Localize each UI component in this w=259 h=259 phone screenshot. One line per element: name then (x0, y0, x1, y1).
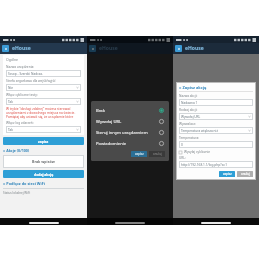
staticText: Strefa zegarkowa dla wejść/wyjść (6, 79, 56, 83)
staticText: URL: (179, 156, 186, 160)
button[interactable]: http://192.168.1.1/log.php?a=1 (179, 161, 253, 168)
button[interactable]: 0 (179, 141, 253, 148)
button[interactable]: zapisz (3, 137, 84, 145)
button[interactable]: » Akcje (0/100) (3, 147, 30, 154)
button[interactable]: zapisz (219, 171, 235, 177)
button[interactable]: Nadawca 1 (179, 99, 253, 106)
button[interactable]: Wywołaj URL (179, 113, 253, 120)
button[interactable]: Powiadomienie (91, 138, 169, 149)
button[interactable]: Tak (6, 98, 81, 105)
staticText: Nazwa akcji: (179, 94, 198, 98)
staticText: Ogólne (6, 57, 19, 62)
staticText: Włącz cykliczne testy: (6, 93, 38, 97)
button[interactable]: anuluj (237, 171, 253, 177)
staticText: zapisz (135, 152, 144, 156)
button[interactable]: Tak (6, 126, 81, 133)
button[interactable]: anuluj (149, 151, 165, 157)
button[interactable]: Temperatura większa niż (179, 127, 253, 134)
staticText: Nadawca 1 (181, 101, 251, 105)
staticText: zapisz (38, 139, 49, 144)
staticText: Nie (8, 86, 76, 90)
staticText: Steruj innym urządzeniem (96, 130, 159, 136)
staticText: Tak (8, 100, 76, 104)
button[interactable]: Menu (89, 45, 96, 52)
staticText: dodaj akcję (34, 172, 54, 177)
button[interactable]: zapisz (131, 151, 147, 157)
staticText: Temperatura większa niż (181, 129, 248, 133)
button[interactable]: Steruj innym urządzeniem (91, 127, 169, 138)
staticText: Scsop - Szeroki Nadcza. (8, 72, 79, 76)
staticText: » Zapisz akcję (179, 85, 207, 90)
staticText: Wysyłaj cyklicznie (184, 150, 211, 154)
button[interactable]: Brak (91, 105, 169, 116)
button[interactable]: dodaj akcję (3, 170, 84, 178)
staticText: eHouse (99, 45, 118, 52)
button[interactable]: Menu (175, 45, 182, 52)
staticText: Wywołaj URL (181, 115, 248, 119)
staticText: eHouse (185, 45, 204, 52)
button[interactable]: Scsop - Szeroki Nadcza. (6, 70, 81, 77)
staticText: W trybie "obsługi zdalnej" możesz sterow… (6, 107, 81, 119)
staticText: anuluj (153, 152, 162, 156)
staticText: Brak wpisów (32, 159, 55, 164)
button[interactable]: » Podłącz do sieci WiFi (3, 180, 45, 187)
button[interactable]: Wysyłaj cyklicznie (179, 150, 211, 154)
button[interactable]: Nie (6, 84, 81, 91)
staticText: Powiadomienie (96, 141, 159, 147)
staticText: http://192.168.1.1/log.php?a=1 (181, 163, 251, 167)
staticText: zapisz (223, 172, 232, 176)
staticText: eHouse (12, 45, 31, 52)
staticText: Status lokalnej WiFi (3, 191, 31, 195)
staticText: anuluj (241, 172, 250, 176)
button[interactable]: Menu (2, 45, 9, 52)
button[interactable]: Wywołaj URL (91, 116, 169, 127)
staticText: Temperatura: (179, 136, 200, 140)
staticText: Rodzaj akcji: (179, 108, 198, 112)
staticText: Tak (8, 128, 76, 132)
staticText: Wyzwalacz: (179, 122, 196, 126)
staticText: Włącz log zdarzeń: (6, 121, 34, 125)
staticText: Brak (96, 108, 159, 114)
staticText: 0 (181, 143, 251, 147)
staticText: Nazwa urządzenia: (6, 65, 35, 69)
staticText: Wywołaj URL (96, 119, 159, 125)
